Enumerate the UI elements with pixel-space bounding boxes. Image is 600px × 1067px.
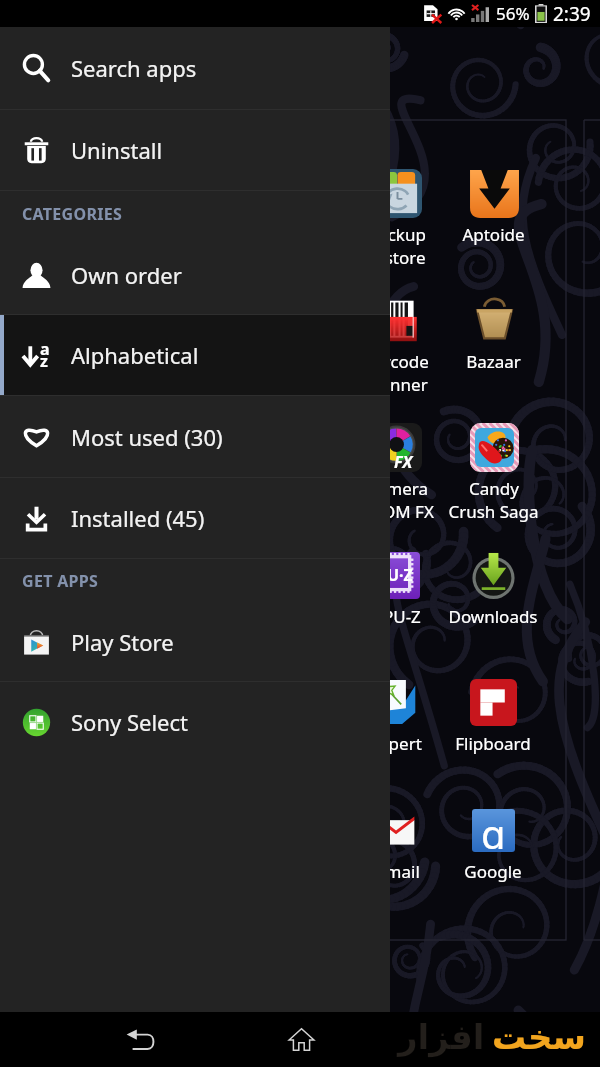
staticText: Own order <box>71 260 182 290</box>
staticText: Search apps <box>71 53 197 83</box>
staticText: CPU-Z <box>372 605 421 628</box>
staticText: scanner <box>364 373 428 396</box>
button[interactable]: Search apps <box>0 27 390 109</box>
button[interactable]: Play Store <box>0 603 390 681</box>
staticText: Alphabetical <box>71 340 199 370</box>
button[interactable]: Aptoide <box>435 167 551 272</box>
button[interactable]: Gmail <box>338 804 454 909</box>
staticText: ZOOM FX <box>359 500 434 523</box>
button[interactable]: Expert <box>338 676 454 781</box>
button[interactable]: Bazaar <box>435 294 551 399</box>
staticText: GET APPS <box>22 570 99 592</box>
staticText: Uninstall <box>71 135 163 165</box>
staticText: سخت <box>492 1017 586 1057</box>
staticText: Candy <box>469 477 519 500</box>
button[interactable]: Most used (30) <box>0 396 390 477</box>
staticText: Most used (30) <box>71 422 223 452</box>
staticText: Aptoide <box>462 223 525 246</box>
button[interactable]: Backup <box>338 167 454 272</box>
staticText: Backup <box>367 223 426 246</box>
staticText: Installed (45) <box>71 503 205 533</box>
button[interactable]: Installed (45) <box>0 478 390 558</box>
staticText: Expert <box>370 732 422 755</box>
button[interactable]: Flipboard <box>435 676 551 781</box>
button[interactable]: Sony Select <box>0 682 390 762</box>
button[interactable]: Downloads <box>435 549 551 654</box>
staticText: Bazaar <box>466 350 521 373</box>
staticText: CATEGORIES <box>22 203 123 225</box>
staticText: Downloads <box>448 605 538 628</box>
staticText: g <box>481 809 506 849</box>
staticText: FX <box>394 451 413 472</box>
button[interactable]: g <box>435 804 551 909</box>
staticText: 2:39 <box>553 1 591 27</box>
button[interactable]: Candy <box>435 421 551 526</box>
staticText: Crush Saga <box>448 500 539 523</box>
button[interactable]: Own order <box>0 236 390 314</box>
staticText: Gmail <box>373 860 420 883</box>
staticText: 56% <box>496 2 530 25</box>
button[interactable]: PU·Z <box>338 549 454 654</box>
button[interactable]: Barcode <box>338 294 454 399</box>
staticText: Camera <box>366 477 428 500</box>
staticText: z <box>40 350 48 372</box>
button[interactable]: a <box>0 315 390 395</box>
button[interactable]: Home <box>270 1012 332 1067</box>
staticText: Play Store <box>71 627 174 657</box>
staticText: Flipboard <box>455 732 531 755</box>
staticText: a <box>40 338 50 360</box>
button[interactable]: Uninstall <box>0 110 390 190</box>
staticText: Sony Select <box>71 707 188 737</box>
staticText: افزار <box>398 1017 485 1057</box>
button[interactable]: Back <box>110 1012 172 1067</box>
staticText: Barcode <box>363 350 429 373</box>
staticText: Google <box>464 860 522 883</box>
staticText: restore <box>368 246 426 269</box>
staticText: PU·Z <box>377 564 413 586</box>
button[interactable]: FX <box>338 421 454 526</box>
